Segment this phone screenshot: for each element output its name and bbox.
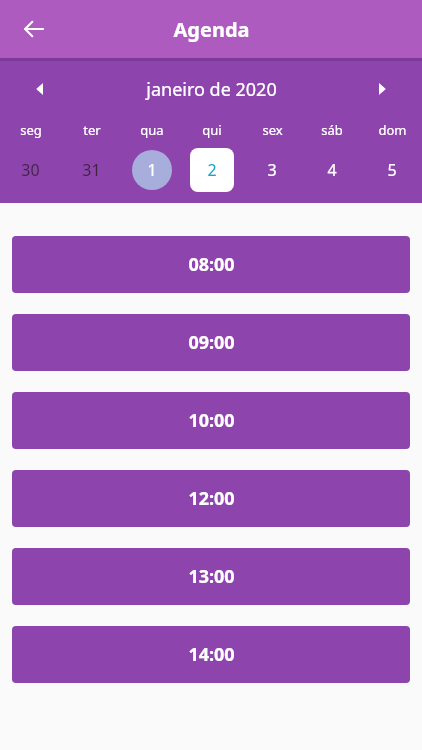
staticText: 14:00 xyxy=(188,642,235,667)
staticText: sáb xyxy=(321,121,343,139)
button[interactable]: 30 xyxy=(0,143,61,197)
staticText: seg xyxy=(20,121,42,139)
staticText: 30 xyxy=(21,159,40,181)
staticText: 13:00 xyxy=(188,564,235,589)
button[interactable]: 13:00 xyxy=(12,548,410,605)
staticText: 10:00 xyxy=(188,408,235,433)
staticText: ter xyxy=(83,121,101,139)
button[interactable]: 08:00 xyxy=(12,236,410,293)
button[interactable]: 12:00 xyxy=(12,470,410,527)
staticText: 3 xyxy=(267,159,277,181)
button[interactable]: 31 xyxy=(61,143,122,197)
button[interactable]: 2 xyxy=(182,143,242,197)
staticText: dom xyxy=(378,121,407,139)
staticText: 5 xyxy=(387,159,397,181)
button[interactable]: Next month xyxy=(362,69,402,109)
button[interactable]: 14:00 xyxy=(12,626,410,683)
button[interactable]: 1 xyxy=(122,143,182,197)
staticText: 08:00 xyxy=(188,252,235,277)
staticText: qua xyxy=(140,121,164,139)
button[interactable]: Previous month xyxy=(20,69,60,109)
staticText: 31 xyxy=(82,159,101,181)
staticText: Agenda xyxy=(173,16,250,43)
staticText: qui xyxy=(202,121,222,139)
staticText: janeiro de 2020 xyxy=(146,77,277,102)
button[interactable]: Back xyxy=(12,7,56,51)
staticText: sex xyxy=(262,121,283,139)
button[interactable]: 09:00 xyxy=(12,314,410,371)
button[interactable]: 5 xyxy=(362,143,422,197)
staticText: 1 xyxy=(147,159,157,181)
staticText: 09:00 xyxy=(188,330,235,355)
staticText: 12:00 xyxy=(188,486,235,511)
staticText: 2 xyxy=(207,159,217,181)
button[interactable]: 10:00 xyxy=(12,392,410,449)
staticText: 4 xyxy=(327,159,337,181)
button[interactable]: 3 xyxy=(242,143,302,197)
button[interactable]: 4 xyxy=(302,143,362,197)
